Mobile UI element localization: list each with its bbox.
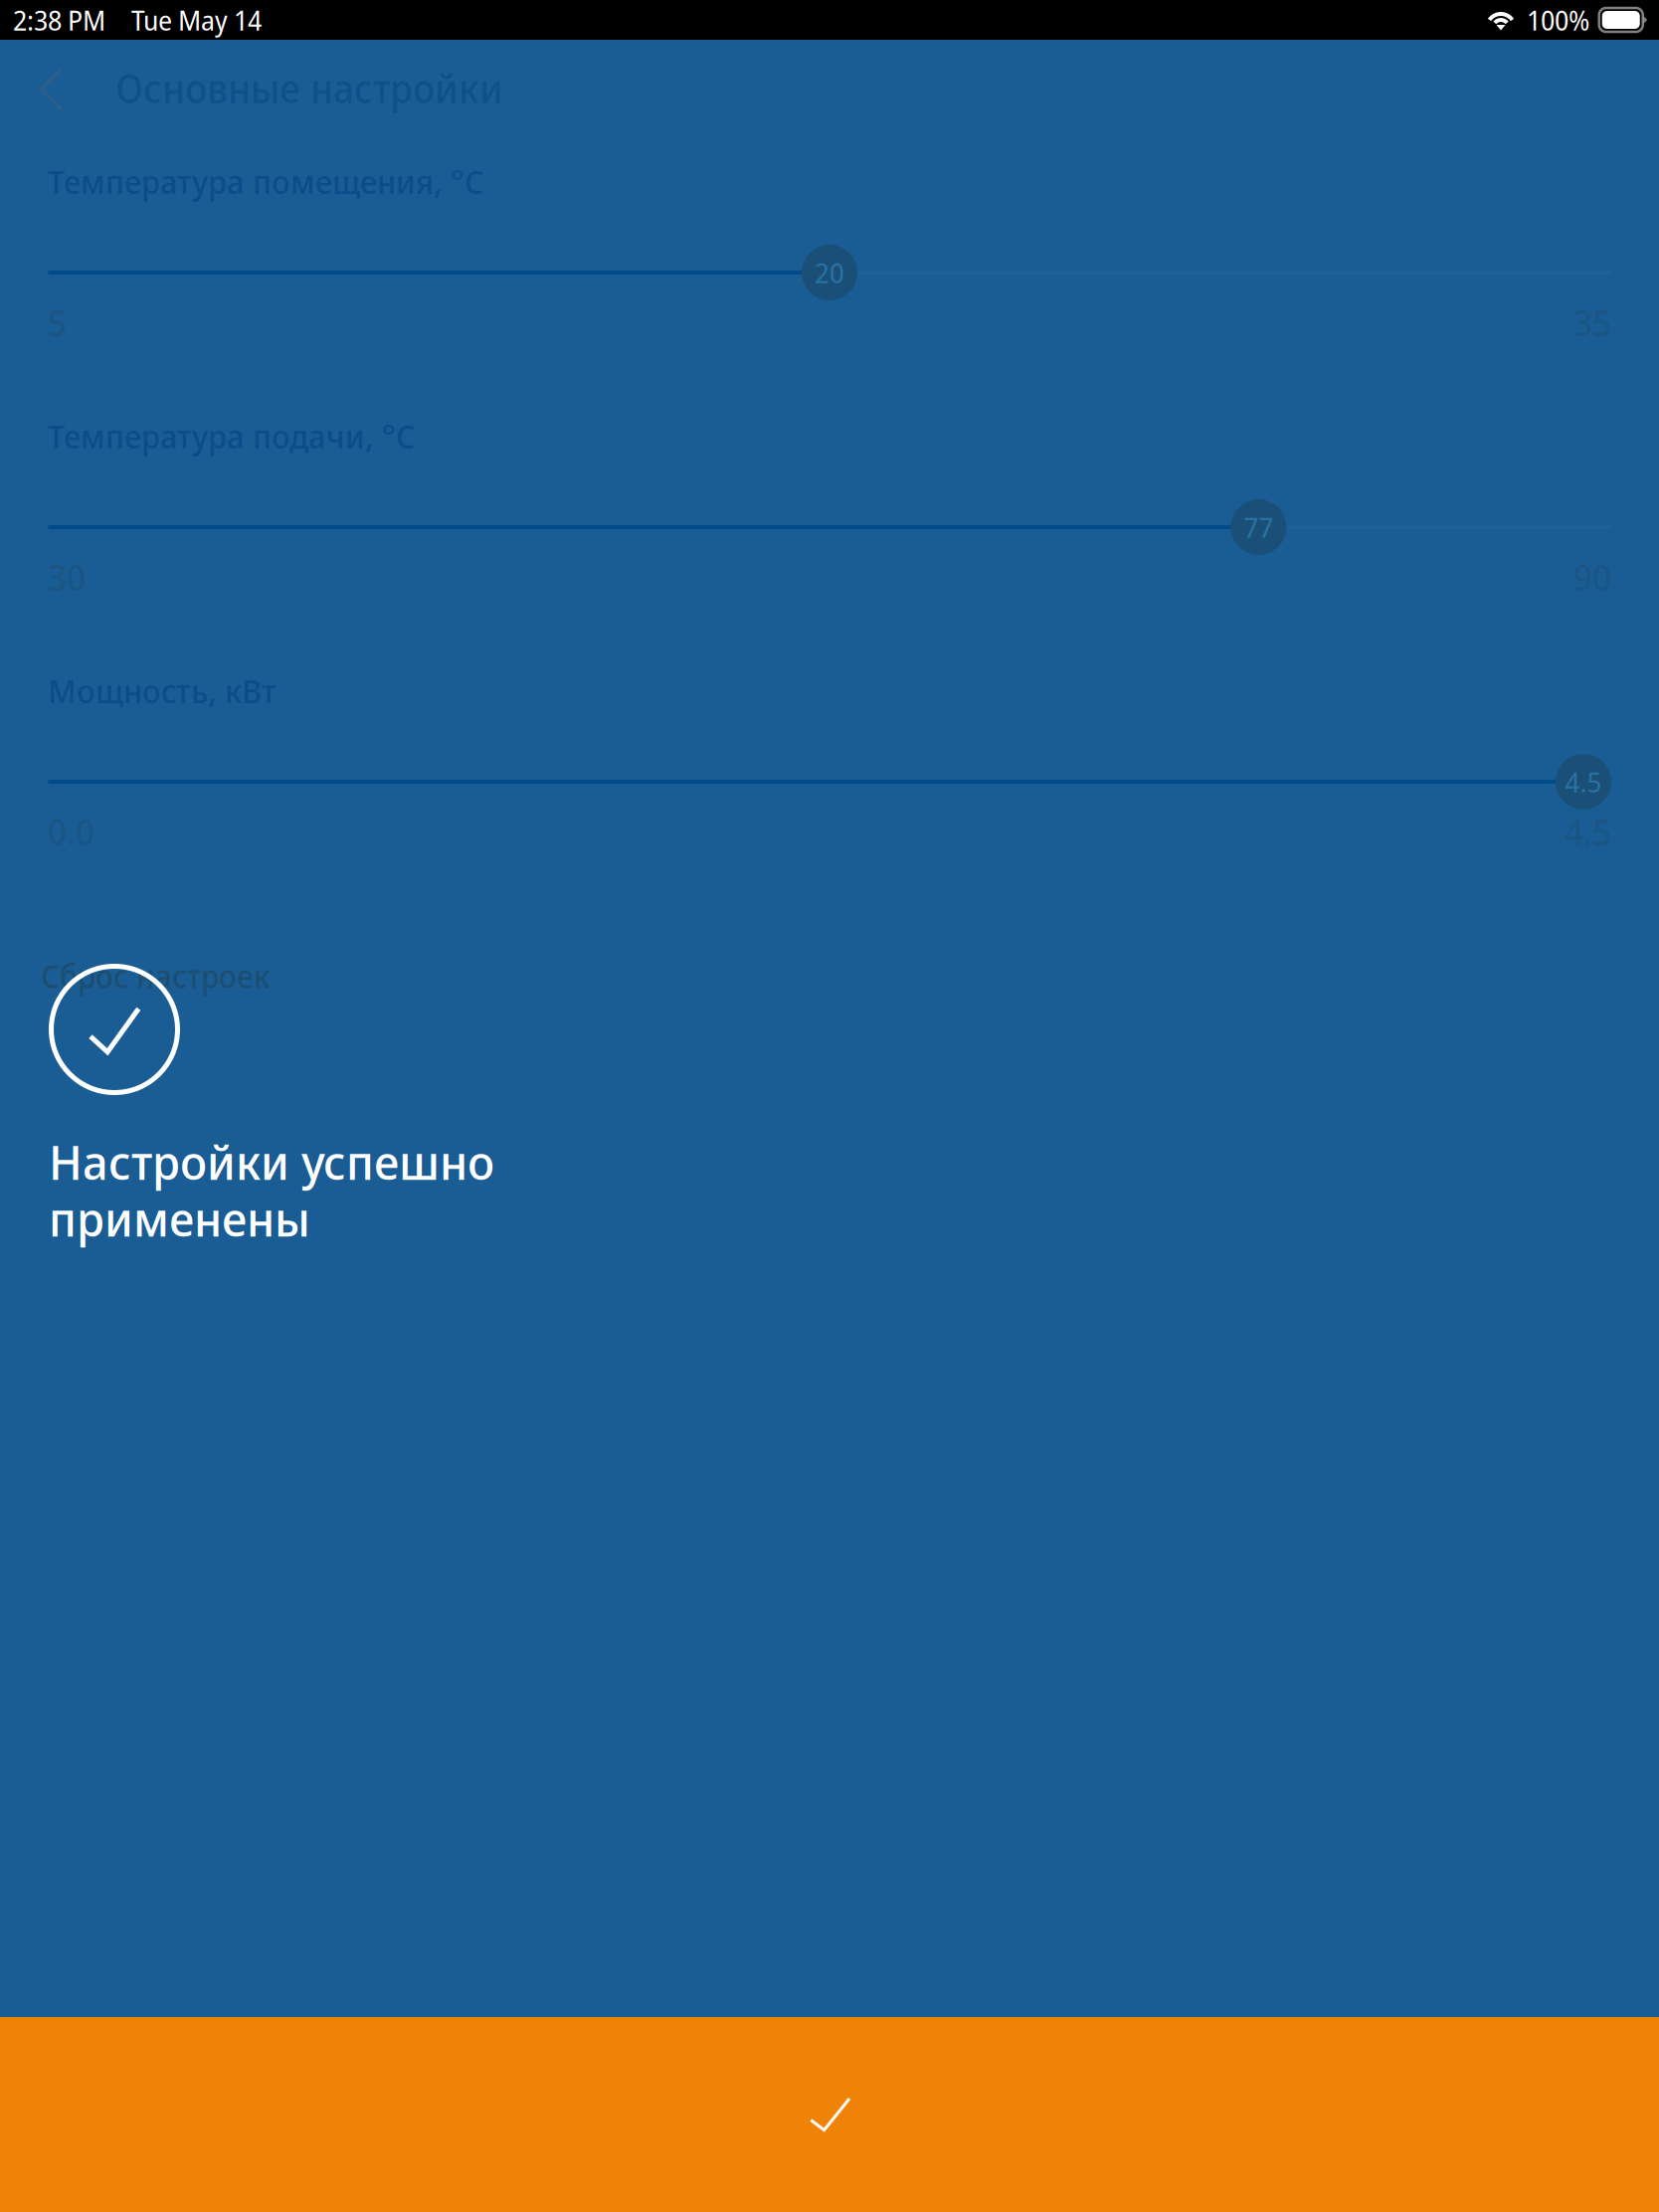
staticText: Основные настройки	[115, 61, 503, 115]
staticText: Мощность, кВт	[48, 668, 276, 713]
staticText: Температура помещения, °C	[48, 158, 483, 204]
staticText: применены	[49, 1186, 310, 1251]
button[interactable]: Apply settings	[0, 2017, 1659, 2212]
staticText: 4.5	[1565, 763, 1602, 801]
staticText: 0.0	[48, 807, 94, 856]
staticText: Сброс настроек	[41, 954, 270, 997]
staticText: 2:38 PM	[13, 1, 105, 39]
staticText: Tue May 14	[131, 1, 262, 39]
staticText: 77	[1244, 508, 1274, 546]
staticText: 4.5	[1565, 807, 1611, 856]
staticText: 30	[48, 553, 86, 601]
button[interactable]: Мощность, кВт	[0, 668, 1611, 923]
staticText: 5	[48, 298, 67, 347]
staticText: 100%	[1527, 1, 1589, 39]
button[interactable]: Сброс настроек	[0, 956, 1612, 996]
staticText: 20	[815, 254, 844, 291]
staticText: Настройки успешно	[49, 1129, 494, 1194]
staticText: Температура подачи, °C	[48, 413, 415, 458]
staticText: 35	[1573, 298, 1611, 347]
staticText: 90	[1573, 553, 1611, 601]
